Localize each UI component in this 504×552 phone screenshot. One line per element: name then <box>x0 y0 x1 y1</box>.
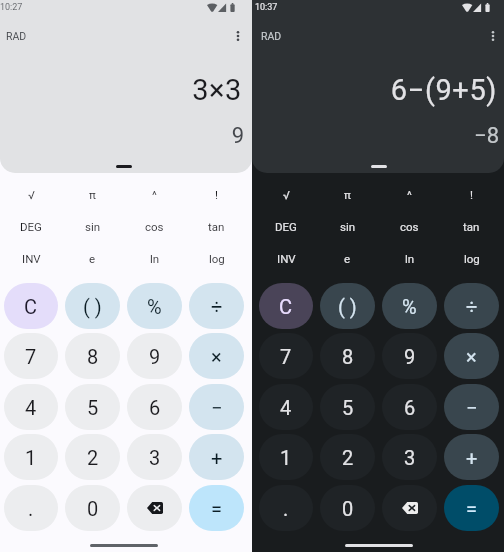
button[interactable]: cos <box>127 210 182 242</box>
staticText: 1 <box>280 446 292 469</box>
staticText: 6 <box>149 396 161 419</box>
button[interactable]: e <box>320 242 375 274</box>
staticText: ( ) <box>83 295 102 318</box>
button[interactable]: log <box>189 242 244 274</box>
staticText: C <box>24 295 38 318</box>
button[interactable]: . <box>4 485 58 531</box>
button[interactable]: 3 <box>127 434 182 480</box>
button[interactable]: − <box>444 384 499 430</box>
button[interactable]: RAD <box>256 26 287 46</box>
button[interactable]: × <box>189 333 244 379</box>
button[interactable]: 9 <box>382 333 437 379</box>
button[interactable]: 3 <box>382 434 437 480</box>
button[interactable]: ( ) <box>320 283 375 329</box>
staticText: 6−(9+5) <box>252 73 497 107</box>
staticText: . <box>28 497 34 520</box>
button[interactable]: ÷ <box>189 283 244 329</box>
staticText: . <box>283 497 289 520</box>
staticText: 6 <box>404 396 416 419</box>
button[interactable]: RAD <box>1 26 32 46</box>
button[interactable]: INV <box>259 242 313 274</box>
button[interactable]: √ <box>259 178 313 210</box>
staticText: 10:27 <box>0 2 23 13</box>
button[interactable]: sin <box>65 210 120 242</box>
button[interactable]: ln <box>382 242 437 274</box>
button[interactable]: 5 <box>320 384 375 430</box>
button[interactable]: DEG <box>4 210 58 242</box>
staticText: × <box>211 345 222 368</box>
button[interactable]: e <box>65 242 120 274</box>
button[interactable]: ! <box>189 178 244 210</box>
button[interactable]: tan <box>444 210 499 242</box>
button[interactable]: 8 <box>65 333 120 379</box>
button[interactable]: log <box>444 242 499 274</box>
button[interactable]: ÷ <box>444 283 499 329</box>
button[interactable]: 4 <box>259 384 313 430</box>
button[interactable]: π <box>65 178 120 210</box>
button[interactable]: tan <box>189 210 244 242</box>
button[interactable]: ( ) <box>65 283 120 329</box>
button[interactable]: = <box>444 485 499 531</box>
button[interactable]: 4 <box>4 384 58 430</box>
button[interactable]: 2 <box>65 434 120 480</box>
button[interactable]: + <box>189 434 244 480</box>
button[interactable]: π <box>320 178 375 210</box>
button[interactable]: Delete <box>382 485 437 531</box>
button[interactable]: Show history <box>0 160 250 173</box>
button[interactable]: Delete <box>127 485 182 531</box>
button[interactable]: . <box>259 485 313 531</box>
button[interactable]: 6 <box>127 384 182 430</box>
button[interactable]: More options <box>226 24 250 48</box>
button[interactable]: 0 <box>65 485 120 531</box>
button[interactable]: 0 <box>320 485 375 531</box>
staticText: 4 <box>280 396 292 419</box>
staticText: + <box>466 446 478 469</box>
button[interactable]: ^ <box>382 178 437 210</box>
button[interactable]: % <box>127 283 182 329</box>
button[interactable]: + <box>444 434 499 480</box>
button[interactable]: 9 <box>127 333 182 379</box>
button[interactable]: cos <box>382 210 437 242</box>
button[interactable]: DEG <box>259 210 313 242</box>
button[interactable]: − <box>189 384 244 430</box>
staticText: 9 <box>0 123 244 149</box>
button[interactable]: INV <box>4 242 58 274</box>
button[interactable]: √ <box>4 178 58 210</box>
button[interactable]: 6 <box>382 384 437 430</box>
button[interactable]: Show history <box>253 160 504 173</box>
staticText: ^ <box>407 188 412 201</box>
button[interactable]: 7 <box>4 333 58 379</box>
button[interactable]: × <box>444 333 499 379</box>
button[interactable]: 1 <box>259 434 313 480</box>
staticText: π <box>89 188 96 201</box>
button[interactable]: 7 <box>259 333 313 379</box>
staticText: × <box>466 345 477 368</box>
staticText: sin <box>340 220 356 233</box>
button[interactable]: 2 <box>320 434 375 480</box>
staticText: 4 <box>25 396 37 419</box>
staticText: ln <box>150 252 160 265</box>
button[interactable]: 8 <box>320 333 375 379</box>
button[interactable]: 1 <box>4 434 58 480</box>
staticText: sin <box>85 220 101 233</box>
staticText: RAD <box>261 30 282 42</box>
button[interactable]: 5 <box>65 384 120 430</box>
button[interactable]: ^ <box>127 178 182 210</box>
staticText: C <box>279 295 293 318</box>
button[interactable]: ln <box>127 242 182 274</box>
button[interactable]: sin <box>320 210 375 242</box>
button[interactable]: ! <box>444 178 499 210</box>
button[interactable]: C <box>259 283 313 329</box>
staticText: 5 <box>87 396 99 419</box>
button[interactable]: C <box>4 283 58 329</box>
button[interactable]: = <box>189 485 244 531</box>
staticText: ÷ <box>466 295 478 318</box>
staticText: 5 <box>342 396 354 419</box>
staticText: DEG <box>20 220 42 233</box>
staticText: % <box>147 295 162 318</box>
staticText: 1 <box>25 446 37 469</box>
staticText: cos <box>145 220 164 233</box>
button[interactable]: % <box>382 283 437 329</box>
button[interactable]: More options <box>481 24 504 48</box>
staticText: e <box>89 252 96 265</box>
